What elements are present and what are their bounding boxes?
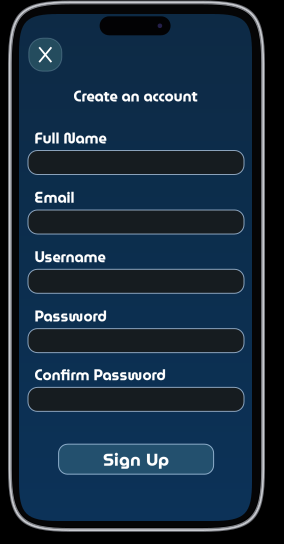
staticText: Confirm Password	[35, 363, 166, 387]
button[interactable]: Full Name	[28, 127, 244, 174]
button[interactable]: Username	[28, 245, 244, 293]
staticText: Password	[35, 305, 107, 328]
button[interactable]: Password	[28, 305, 244, 353]
staticText: Username	[35, 245, 106, 269]
button[interactable]: Sign Up	[59, 444, 214, 474]
staticText: Email	[35, 186, 75, 209]
button[interactable]: Email	[28, 186, 244, 234]
staticText: Sign Up	[103, 446, 169, 473]
staticText: Create an account	[73, 85, 197, 108]
button[interactable]: Confirm Password	[28, 363, 244, 411]
staticText: Full Name	[35, 127, 107, 150]
button[interactable]: Close	[29, 38, 62, 71]
